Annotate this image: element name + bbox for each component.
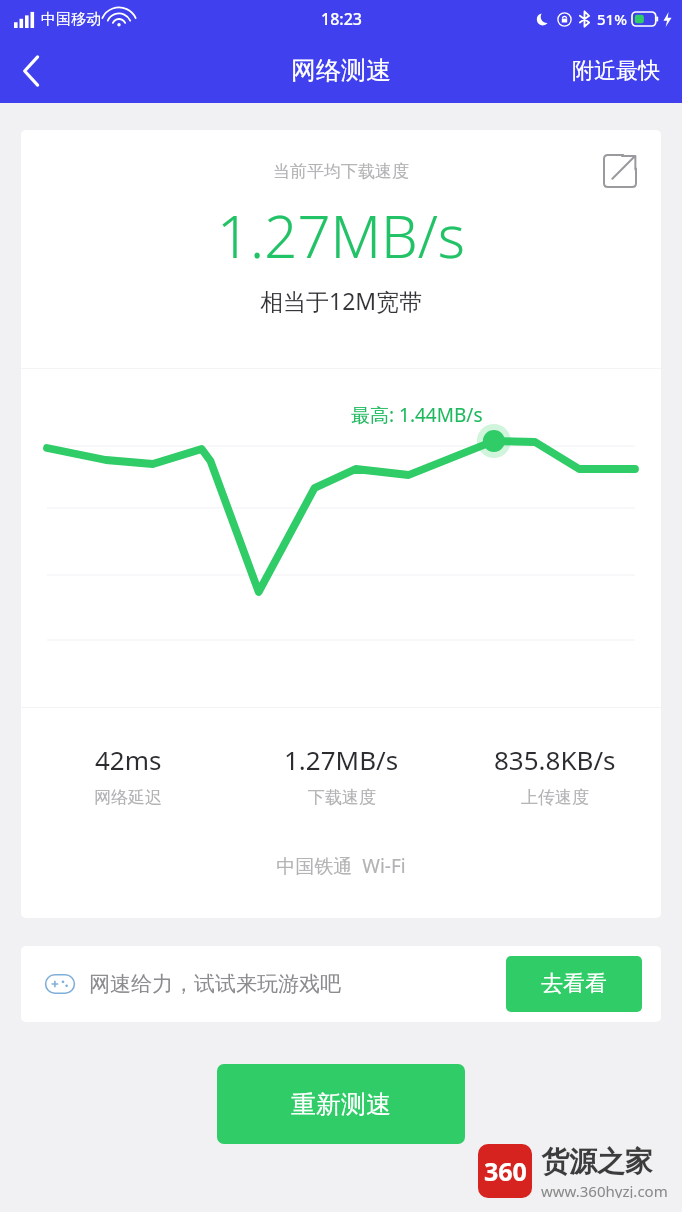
button[interactable]: 附近最快 bbox=[550, 43, 682, 99]
staticText: 货源之家 bbox=[541, 1144, 653, 1179]
button[interactable]: Back bbox=[0, 38, 62, 103]
staticText: 重新测速 bbox=[291, 1089, 391, 1120]
staticText: 网速给力，试试来玩游戏吧 bbox=[89, 971, 341, 997]
staticText: 下载速度 bbox=[308, 787, 376, 808]
staticText: 网络延迟 bbox=[94, 787, 162, 808]
staticText: 51% bbox=[597, 9, 627, 29]
staticText: 中国移动 bbox=[41, 10, 101, 29]
staticText: 18:23 bbox=[321, 8, 362, 30]
staticText: 360 bbox=[484, 1154, 527, 1188]
staticText: 当前平均下载速度 bbox=[273, 161, 409, 182]
staticText: 1.27MB/s bbox=[217, 196, 465, 275]
staticText: 中国铁通 Wi-Fi bbox=[21, 853, 661, 879]
staticText: 去看看 bbox=[541, 970, 607, 998]
staticText: 42ms bbox=[95, 742, 162, 777]
staticText: 1.27MB/s bbox=[284, 742, 399, 777]
button[interactable]: Share bbox=[593, 144, 647, 198]
staticText: 网络测速 bbox=[291, 55, 391, 86]
staticText: 835.8KB/s bbox=[494, 742, 616, 777]
button[interactable]: 网速给力，试试来玩游戏吧 bbox=[21, 946, 661, 1022]
staticText: 附近最快 bbox=[572, 57, 660, 85]
button[interactable]: 去看看 bbox=[506, 956, 642, 1012]
button[interactable]: 重新测速 bbox=[217, 1064, 465, 1144]
staticText: 最高: 1.44MB/s bbox=[351, 402, 483, 428]
staticText: 相当于12M宽带 bbox=[260, 285, 423, 316]
staticText: www.360hyzj.com bbox=[541, 1181, 668, 1198]
staticText: 上传速度 bbox=[521, 787, 589, 808]
